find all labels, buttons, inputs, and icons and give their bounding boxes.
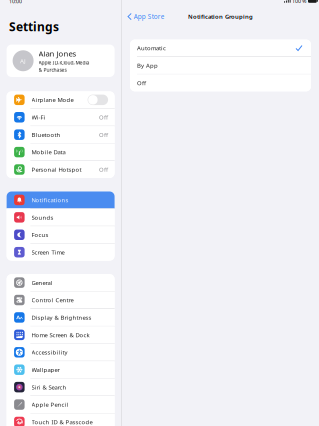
staticText: Airplane Mode: [31, 96, 73, 104]
button[interactable]: Personal Hotspot: [7, 161, 115, 178]
staticText: Mobile Data: [31, 148, 65, 156]
staticText: Notifications: [31, 196, 68, 204]
button[interactable]: Apple Pencil: [7, 396, 115, 413]
staticText: Settings: [9, 18, 59, 35]
staticText: Display & Brightness: [31, 313, 91, 321]
staticText: & Purchases: [39, 66, 67, 73]
staticText: Off: [99, 165, 108, 173]
button[interactable]: Wi-Fi: [7, 109, 115, 126]
staticText: Wallpaper: [31, 366, 59, 374]
button[interactable]: AJ: [0, 45, 121, 77]
button[interactable]: App Store: [122, 10, 169, 24]
staticText: Bluetooth: [31, 131, 60, 139]
staticText: Apple ID, iCloud, Media: [39, 59, 90, 66]
staticText: 10:00: [9, 0, 22, 5]
button[interactable]: Home Screen & Dock: [7, 326, 115, 343]
button[interactable]: Notifications: [7, 191, 115, 208]
staticText: Notification Grouping: [188, 13, 253, 21]
button[interactable]: Wallpaper: [7, 361, 115, 378]
staticText: 100 %: [292, 0, 306, 4]
button[interactable]: By App: [130, 57, 311, 74]
staticText: App Store: [134, 12, 165, 21]
button[interactable]: Automatic: [130, 40, 311, 56]
staticText: Touch ID & Passcode: [31, 418, 92, 426]
staticText: Apple Pencil: [31, 401, 68, 409]
staticText: Home Screen & Dock: [31, 331, 89, 339]
button[interactable]: Display & Brightness: [7, 309, 115, 326]
staticText: Sounds: [31, 213, 53, 221]
staticText: Off: [99, 131, 108, 139]
button[interactable]: Screen Time: [7, 244, 115, 261]
staticText: Personal Hotspot: [31, 165, 81, 173]
button[interactable]: Accessibility: [7, 344, 115, 361]
button[interactable]: Siri & Search: [7, 379, 115, 396]
button[interactable]: Off: [130, 74, 311, 91]
button[interactable]: General: [7, 274, 115, 291]
staticText: General: [31, 279, 52, 287]
staticText: Off: [137, 79, 146, 87]
button[interactable]: Touch ID & Passcode: [7, 413, 115, 426]
staticText: Siri & Search: [31, 383, 66, 391]
staticText: Alan Jones: [39, 48, 77, 59]
staticText: Accessibility: [31, 348, 67, 356]
staticText: Wi-Fi: [31, 113, 45, 121]
staticText: AJ: [20, 57, 26, 65]
button[interactable]: Sounds: [7, 209, 115, 226]
button[interactable]: Bluetooth: [7, 126, 115, 143]
staticText: Control Centre: [31, 296, 73, 304]
button[interactable]: Airplane Mode: [7, 91, 115, 108]
staticText: Screen Time: [31, 248, 64, 256]
button[interactable]: Focus: [7, 226, 115, 243]
button[interactable]: Mobile Data: [7, 144, 115, 160]
button[interactable]: Control Centre: [7, 292, 115, 308]
staticText: By App: [137, 61, 158, 69]
staticText: Off: [99, 113, 108, 121]
staticText: Automatic: [137, 44, 166, 52]
staticText: Focus: [31, 231, 48, 239]
